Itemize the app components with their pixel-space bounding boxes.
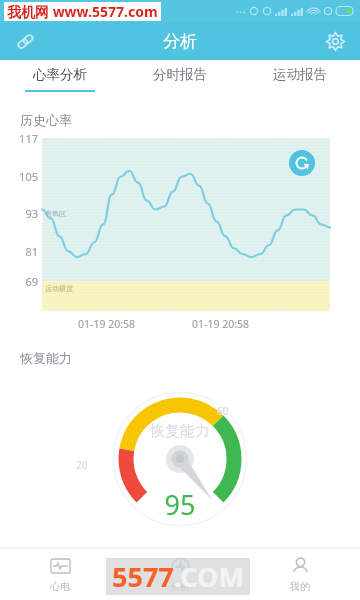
staticText: 93 [10, 206, 38, 221]
button[interactable]: Settings [318, 24, 352, 58]
button[interactable]: Refresh [289, 150, 315, 176]
staticText: 运动报告 [273, 66, 327, 83]
staticText: 95 [0, 486, 360, 523]
staticText: 20 [76, 458, 88, 472]
staticText: 我机网 www.5577.com [7, 2, 158, 21]
staticText: 分时报告 [153, 66, 207, 83]
staticText: 69 [10, 274, 38, 289]
staticText: 分析 [170, 580, 190, 593]
button[interactable]: 运动报告 [240, 60, 360, 98]
staticText: 有氧区 [45, 209, 66, 218]
staticText: 105 [10, 169, 38, 184]
button[interactable]: Device connection [8, 24, 42, 58]
staticText: 81 [10, 244, 38, 259]
staticText: 心电 [50, 580, 70, 593]
button[interactable]: 分析 [120, 548, 240, 600]
staticText: 历史心率 [20, 112, 72, 128]
staticText: 我的 [290, 580, 310, 593]
staticText: .COM [174, 558, 244, 595]
button[interactable]: 心电 [0, 548, 120, 600]
staticText: 分析 [163, 31, 197, 52]
staticText: 恢复能力 [0, 422, 360, 441]
staticText: 5577 [112, 558, 174, 595]
staticText: 60 [217, 404, 229, 418]
button[interactable]: 我的 [240, 548, 360, 600]
staticText: 01-19 20:58 [192, 317, 249, 331]
staticText: 117 [10, 131, 38, 146]
staticText: 01-19 20:58 [78, 317, 135, 331]
button[interactable]: 分时报告 [120, 60, 240, 98]
staticText: 恢复能力 [20, 350, 72, 366]
button[interactable]: 心率分析 [0, 60, 120, 98]
staticText: 心率分析 [33, 66, 87, 83]
staticText: 运动极度 [45, 284, 73, 293]
